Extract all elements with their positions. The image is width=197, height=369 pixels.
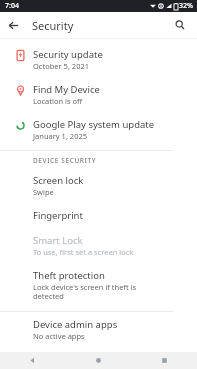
staticText: Fingerprint (33, 209, 83, 222)
button[interactable]: Security update (0, 42, 197, 77)
button[interactable]: Google Play system update (0, 112, 197, 147)
staticText: Lock device's screen if theft is detecte… (33, 282, 137, 302)
staticText: Screen lock (33, 174, 84, 187)
staticText: October 5, 2021 (33, 61, 90, 71)
staticText: To use, first set a screen lock (33, 247, 134, 257)
staticText: Smart Lock (33, 234, 83, 247)
staticText: DEVICE SECURITY (33, 156, 97, 165)
staticText: Find My Device (33, 83, 100, 96)
staticText: No active apps (33, 331, 85, 341)
staticText: Security update (33, 48, 103, 61)
button[interactable]: Home (65, 352, 131, 369)
button[interactable]: Back (0, 12, 26, 38)
staticText: 32% (179, 1, 193, 11)
staticText: January 1, 2025 (33, 131, 88, 141)
button[interactable]: Device admin apps (0, 312, 197, 347)
button[interactable]: Back (0, 352, 65, 369)
button[interactable]: Recent apps (131, 352, 197, 369)
button[interactable]: Smart Lock (0, 228, 197, 263)
button[interactable]: Theft protection (0, 263, 197, 308)
button[interactable]: Fingerprint (0, 203, 197, 228)
button[interactable]: Search (167, 12, 193, 38)
staticText: Theft protection (33, 269, 105, 282)
staticText: Device admin apps (33, 318, 118, 331)
staticText: Swipe (33, 187, 54, 197)
button[interactable]: Find My Device (0, 77, 197, 112)
staticText: Google Play system update (33, 118, 155, 131)
staticText: Security (32, 18, 74, 33)
staticText: 7:04 (5, 1, 19, 11)
staticText: Location is off (33, 96, 83, 106)
button[interactable]: Screen lock (0, 168, 197, 203)
